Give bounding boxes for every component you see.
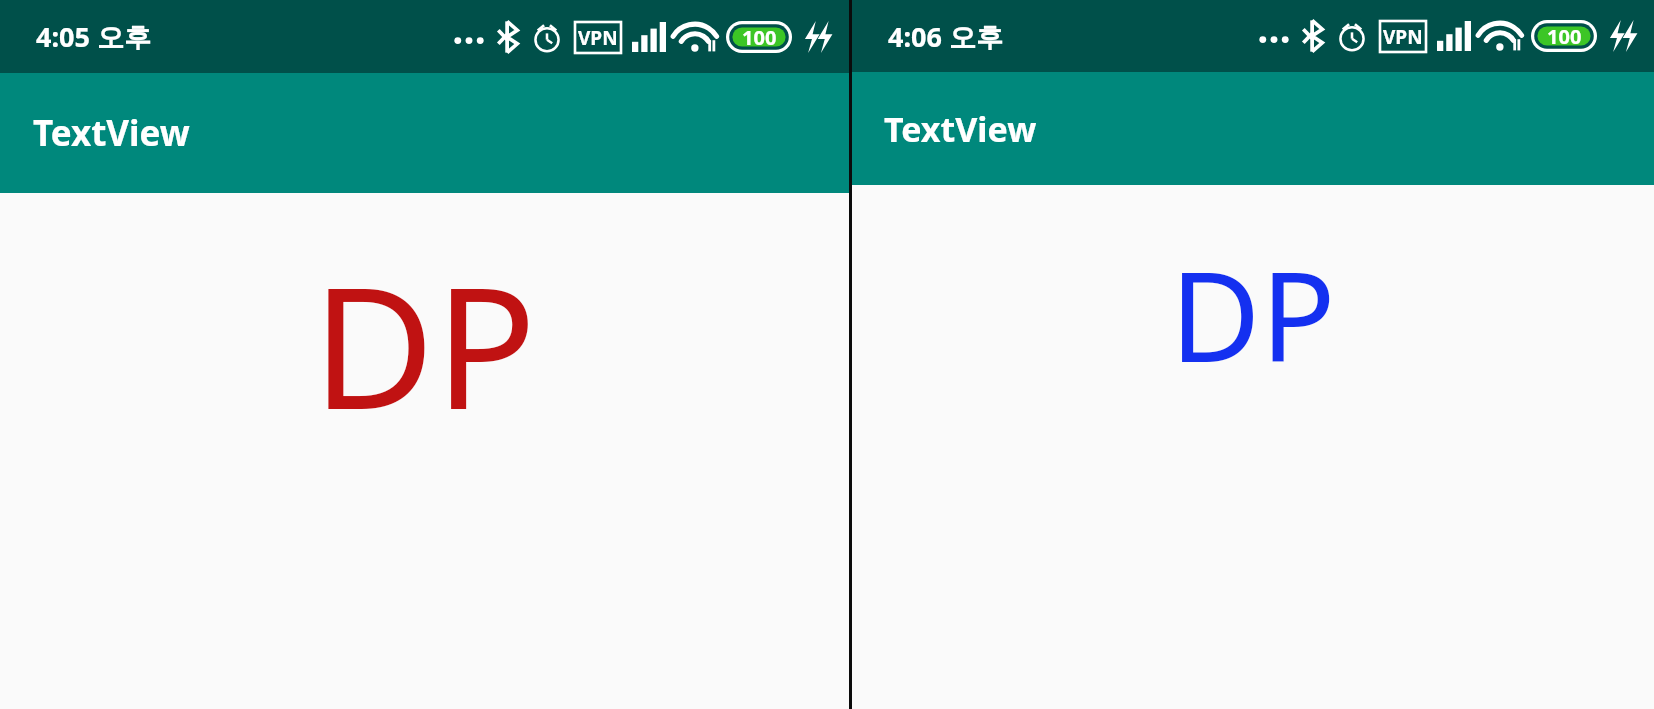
button[interactable]: DP [312,229,537,458]
other: Bluetooth [1302,19,1324,53]
other: Charging [1608,19,1640,53]
staticText: TextView [884,106,1037,152]
other: Battery 100 percent [726,21,792,53]
staticText: VPN [1383,24,1423,50]
other: Charging [803,20,835,54]
staticText: 100 [742,24,777,51]
other: More notifications [452,22,486,52]
other: More notifications [1257,21,1291,51]
other: Wi-Fi [677,21,715,53]
staticText: 4:05 오후 [36,18,151,55]
other: Alarm set [1335,19,1369,53]
other: VPN active [1380,21,1426,52]
staticText: 4:06 오후 [888,18,1003,55]
other: Mobile signal [1437,21,1471,51]
other: Bluetooth [497,20,519,54]
button[interactable]: DP [1170,229,1336,398]
button[interactable]: TextView [852,72,1654,185]
other: Battery 100 percent [1531,20,1597,52]
button[interactable]: TextView [0,73,849,193]
other: VPN active [575,22,621,53]
staticText: VPN [578,25,618,51]
other: Wi-Fi [1482,20,1520,52]
staticText: 100 [1547,23,1582,50]
staticText: TextView [33,109,190,157]
other: Mobile signal [632,22,666,52]
other: Alarm set [530,20,564,54]
